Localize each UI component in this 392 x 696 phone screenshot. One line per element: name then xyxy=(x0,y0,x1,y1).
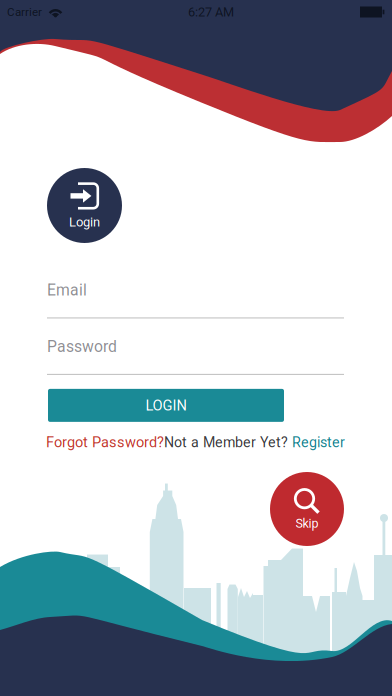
staticText: Login xyxy=(69,214,100,230)
button[interactable]: Skip xyxy=(270,472,344,546)
button[interactable]: LOGIN xyxy=(48,389,284,422)
staticText: Skip xyxy=(295,516,318,531)
staticText: 6:27 AM xyxy=(188,4,234,19)
staticText: Register xyxy=(292,434,345,451)
button[interactable]: Forgot Password? xyxy=(46,434,164,451)
staticText: Email xyxy=(47,281,87,299)
staticText: LOGIN xyxy=(145,397,186,414)
button[interactable]: Register xyxy=(292,434,345,451)
staticText: Password xyxy=(47,337,117,356)
staticText: Not a Member Yet? xyxy=(164,434,288,451)
staticText: Forgot Password? xyxy=(46,434,164,451)
staticText: Carrier xyxy=(7,5,42,19)
